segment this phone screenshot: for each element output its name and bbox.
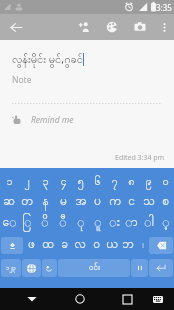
button[interactable]: Hide keyboard (17, 288, 47, 310)
staticText: ိ (41, 214, 49, 232)
button[interactable]: ီ (54, 212, 72, 234)
button[interactable]: ၁ (0, 172, 18, 191)
button[interactable]: Remind me (0, 110, 174, 130)
button[interactable]: Add image (126, 14, 154, 40)
button[interactable]: ၊ (136, 234, 149, 256)
staticText: ၄ (60, 174, 67, 190)
button[interactable]: လ (72, 234, 88, 256)
staticText: ခ (61, 236, 68, 254)
staticText: ာ (125, 214, 138, 232)
staticText: ဘ (122, 236, 134, 254)
button[interactable]: Emoji (42, 259, 57, 277)
button[interactable]: Switch keyboard (147, 288, 169, 310)
button[interactable]: More options (154, 14, 174, 40)
staticText: သ (143, 193, 155, 211)
button[interactable]: Change color (98, 14, 126, 40)
staticText: ူ (94, 214, 102, 232)
button[interactable]: ါ (140, 212, 157, 234)
staticText: ၃ (42, 174, 49, 190)
button[interactable]: ၅ (72, 172, 89, 191)
staticText: ၀ (162, 174, 169, 190)
button[interactable]: န (36, 191, 54, 212)
button[interactable]: ၆ (89, 172, 106, 191)
button[interactable]: ပ (89, 191, 106, 212)
staticText: အ (75, 193, 87, 211)
button[interactable]: ာ (123, 212, 140, 234)
staticText: ဖ (28, 236, 35, 254)
button[interactable]: Shift (1, 237, 23, 254)
button[interactable]: ့ (157, 212, 174, 234)
staticText: 3:35 (156, 2, 172, 13)
button[interactable]: ၂ (18, 172, 36, 191)
staticText: ၆ (94, 174, 101, 190)
button[interactable]: Space (58, 259, 130, 277)
button[interactable]: Home (65, 288, 95, 310)
button[interactable]: ဖ (23, 234, 40, 256)
button[interactable]: ူ (89, 212, 106, 234)
staticText: ဝ (93, 236, 100, 254)
button[interactable]: Enter (149, 259, 173, 277)
staticText: ဆ (3, 193, 15, 211)
staticText: ု (77, 214, 85, 232)
staticText: ၊ (142, 238, 144, 253)
button[interactable]: အ (72, 191, 89, 212)
button[interactable]: Back (0, 14, 32, 40)
button[interactable]: ထ (40, 234, 56, 256)
staticText: Remind me (31, 114, 74, 126)
button[interactable]: ု (72, 212, 89, 234)
staticText: မ (60, 193, 67, 211)
button[interactable]: း (106, 212, 123, 234)
staticText: Edited 3:34 pm (115, 153, 165, 163)
staticText: လ (74, 236, 86, 254)
button[interactable]: ၈ (123, 172, 140, 191)
button[interactable]: Backspace (149, 237, 173, 254)
staticText: က (109, 193, 121, 211)
button[interactable]: ယ (104, 234, 120, 256)
button[interactable]: ိ (36, 212, 54, 234)
button[interactable]: ၃ (36, 172, 54, 191)
staticText: စ (162, 193, 169, 211)
button[interactable]: Numbers (1, 259, 21, 277)
staticText: ၅ (77, 174, 84, 190)
staticText: း (109, 214, 120, 232)
button[interactable]: ၇ (106, 172, 123, 191)
staticText: ၁ (6, 174, 13, 190)
button[interactable]: Settings (131, 259, 148, 277)
staticText: ေ (2, 214, 17, 232)
staticText: ထ (42, 236, 54, 254)
button[interactable]: ၉ (140, 172, 157, 191)
button[interactable]: Change language (22, 259, 41, 277)
button[interactable]: ဝ (88, 234, 104, 256)
staticText: ပ (94, 193, 101, 211)
button[interactable]: မ (54, 191, 72, 212)
button[interactable]: Recent apps (113, 288, 141, 310)
button[interactable]: ြ (18, 212, 36, 234)
button[interactable]: င (123, 191, 140, 212)
staticText: ဝင်း (89, 262, 100, 274)
staticText: န (42, 193, 49, 211)
button[interactable]: သ (140, 191, 157, 212)
staticText: ါ (144, 214, 154, 232)
staticText: တ (21, 193, 33, 211)
staticText: လွန်းမိုင်း မွင်,ဂွခင် (12, 51, 83, 68)
staticText: ၈ (128, 174, 135, 190)
button[interactable]: စ (157, 191, 174, 212)
staticText: ီ (59, 214, 67, 232)
button[interactable]: ခ (56, 234, 72, 256)
button[interactable]: ေ (0, 212, 18, 234)
staticText: ယ (106, 236, 118, 254)
staticText: ြ (22, 214, 32, 232)
button[interactable]: ၄ (54, 172, 72, 191)
staticText: ၁၂၃ (6, 264, 16, 273)
button[interactable]: က (106, 191, 123, 212)
staticText: င (128, 193, 135, 211)
button[interactable]: တ (18, 191, 36, 212)
staticText: Note (12, 74, 32, 86)
button[interactable]: Add collaborator (72, 14, 98, 40)
staticText: ့ (162, 214, 170, 232)
button[interactable]: ၀ (157, 172, 174, 191)
staticText: ၇ (111, 174, 118, 190)
button[interactable]: ဆ (0, 191, 18, 212)
staticText: ၉ (145, 174, 152, 190)
button[interactable]: ဘ (120, 234, 136, 256)
